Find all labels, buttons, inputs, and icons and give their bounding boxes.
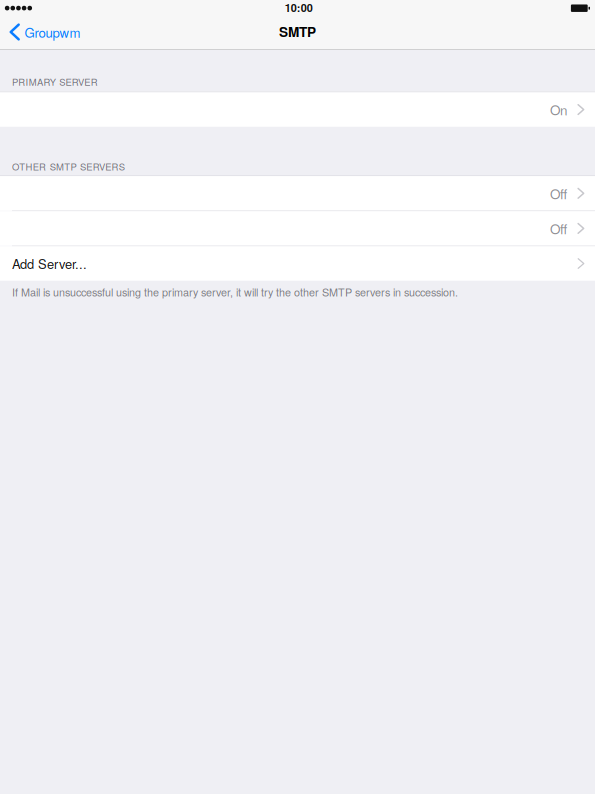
staticText: SMTP (279, 22, 316, 41)
staticText: 10:00 (285, 0, 313, 15)
button[interactable]: Primary server, On (0, 92, 595, 127)
button[interactable]: Other SMTP server, Off (0, 211, 595, 246)
staticText: Off (550, 219, 567, 238)
staticText: Add Server... (12, 254, 87, 273)
staticText: OTHER SMTP SERVERS (12, 160, 125, 173)
button[interactable]: Back to Groupwm (0, 17, 90, 50)
button[interactable]: Add Server (0, 246, 595, 281)
staticText: Off (550, 184, 567, 203)
staticText: If Mail is unsuccessful using the primar… (12, 284, 458, 300)
staticText: PRIMARY SERVER (12, 75, 98, 88)
button[interactable]: Other SMTP server, Off (0, 176, 595, 210)
staticText: On (550, 100, 567, 119)
staticText: Groupwm (24, 22, 80, 41)
